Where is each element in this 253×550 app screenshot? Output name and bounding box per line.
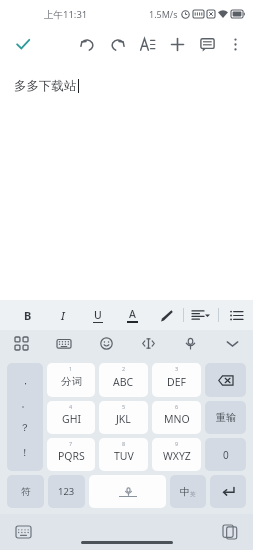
- staticText: 1: [69, 365, 73, 372]
- staticText: 多多下载站: [14, 78, 77, 94]
- staticText: U: [94, 308, 102, 322]
- button[interactable]: Clipboard: [219, 521, 241, 543]
- button[interactable]: Voice input: [169, 330, 211, 357]
- staticText: ABC: [113, 375, 134, 389]
- staticText: 0: [223, 448, 229, 462]
- staticText: GHI: [62, 412, 81, 426]
- button[interactable]: Keyboard: [43, 330, 85, 357]
- button[interactable]: Undo: [73, 30, 101, 58]
- staticText: 7: [69, 440, 73, 447]
- button[interactable]: Redo: [103, 30, 131, 58]
- button[interactable]: PQRS: [47, 438, 95, 471]
- staticText: 重输: [216, 411, 236, 424]
- button[interactable]: MNO: [152, 401, 201, 434]
- staticText: ？: [20, 421, 30, 434]
- staticText: DEF: [167, 375, 186, 389]
- staticText: B: [24, 308, 32, 323]
- button[interactable]: GHI: [47, 401, 95, 434]
- staticText: MNO: [164, 412, 190, 426]
- button[interactable]: Alignment: [184, 300, 218, 330]
- button[interactable]: Bold: [10, 300, 45, 330]
- button[interactable]: Italic: [45, 300, 80, 330]
- button[interactable]: Bulleted list: [219, 300, 253, 330]
- button[interactable]: Hide keyboard: [211, 330, 253, 357]
- staticText: I: [61, 308, 65, 323]
- button[interactable]: ABC: [99, 363, 148, 397]
- staticText: JKL: [116, 412, 131, 426]
- staticText: 8: [122, 440, 126, 447]
- staticText: 分词: [61, 375, 82, 388]
- staticText: WXYZ: [163, 449, 191, 463]
- staticText: 9: [175, 440, 179, 447]
- staticText: 中: [180, 485, 190, 498]
- button[interactable]: Text formatting: [133, 30, 161, 58]
- button[interactable]: Switch language: [170, 475, 206, 508]
- button[interactable]: Switch input method: [12, 521, 34, 543]
- button[interactable]: Enter: [210, 475, 246, 508]
- button[interactable]: Cursor control: [127, 330, 169, 357]
- button[interactable]: Done: [10, 31, 36, 57]
- staticText: 4: [69, 403, 73, 410]
- button[interactable]: DEF: [152, 363, 201, 397]
- button[interactable]: Underline: [80, 300, 115, 330]
- button[interactable]: 重输: [205, 401, 246, 434]
- button[interactable]: JKL: [99, 401, 148, 434]
- button[interactable]: 123: [48, 475, 85, 508]
- staticText: 。: [21, 398, 30, 409]
- button[interactable]: Emoji: [85, 330, 127, 357]
- staticText: ，: [21, 375, 30, 386]
- staticText: PQRS: [58, 449, 85, 463]
- staticText: 英: [190, 491, 196, 498]
- button[interactable]: More options: [221, 30, 249, 58]
- staticText: 1.5M/s: [149, 8, 178, 20]
- staticText: 上午11:31: [44, 8, 88, 21]
- button[interactable]: 符: [7, 475, 44, 508]
- button[interactable]: Comment: [193, 30, 221, 58]
- staticText: 符: [21, 486, 31, 498]
- button[interactable]: 0: [205, 438, 246, 471]
- staticText: TUV: [114, 449, 134, 463]
- staticText: ！: [20, 446, 30, 459]
- button[interactable]: Add: [163, 30, 191, 58]
- staticText: 5: [122, 403, 126, 410]
- staticText: 123: [58, 485, 75, 498]
- button[interactable]: Apps: [0, 330, 43, 357]
- staticText: 6: [175, 403, 179, 410]
- button[interactable]: Punctuation: [7, 363, 43, 471]
- button[interactable]: Text color: [115, 300, 149, 330]
- staticText: 3: [175, 365, 179, 372]
- button[interactable]: WXYZ: [152, 438, 201, 471]
- button[interactable]: Backspace: [205, 363, 246, 397]
- button[interactable]: Space: [89, 475, 166, 508]
- button[interactable]: Highlight: [149, 300, 183, 330]
- button[interactable]: TUV: [99, 438, 148, 471]
- staticText: 2: [122, 365, 126, 372]
- button[interactable]: 分词: [47, 363, 95, 397]
- staticText: A: [129, 307, 136, 321]
